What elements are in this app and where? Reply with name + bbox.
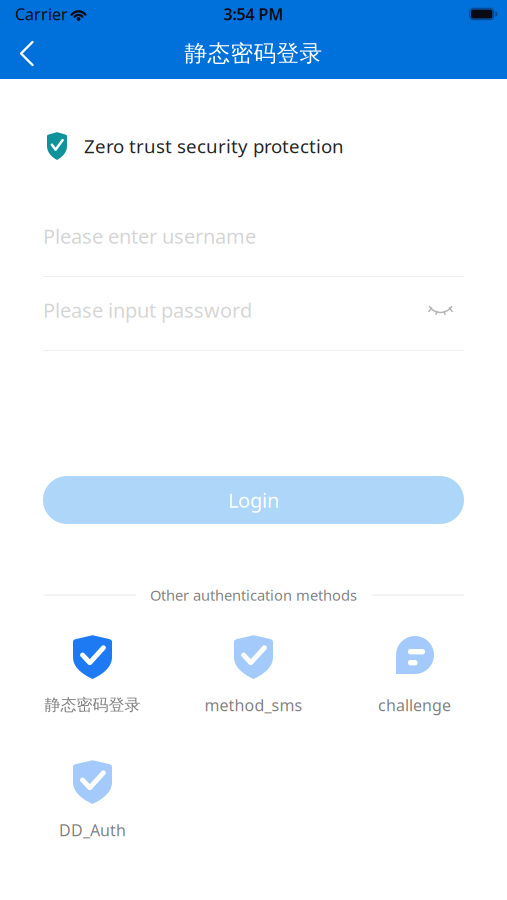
staticText: 3:54 PM (223, 3, 283, 25)
staticText: Zero trust security protection (84, 134, 344, 158)
staticText: 静态密码登录 (44, 695, 140, 715)
button[interactable]: 静态密码登录 (12, 635, 173, 712)
staticText: challenge (378, 694, 451, 716)
staticText: Please enter username (43, 223, 256, 249)
staticText: DD_Auth (59, 819, 126, 841)
button[interactable]: DD_Auth (12, 760, 173, 837)
button[interactable]: Show password (430, 297, 464, 323)
staticText: 静态密码登录 (184, 40, 322, 67)
staticText: method_sms (204, 694, 302, 716)
staticText: Please input password (43, 297, 252, 323)
staticText: Other authentication methods (150, 585, 357, 605)
button[interactable]: Login (43, 476, 464, 524)
button[interactable]: Back (0, 28, 54, 79)
button[interactable]: challenge (334, 635, 495, 712)
staticText: Login (228, 487, 279, 513)
button[interactable]: method_sms (173, 635, 334, 712)
staticText: Carrier (15, 3, 68, 25)
